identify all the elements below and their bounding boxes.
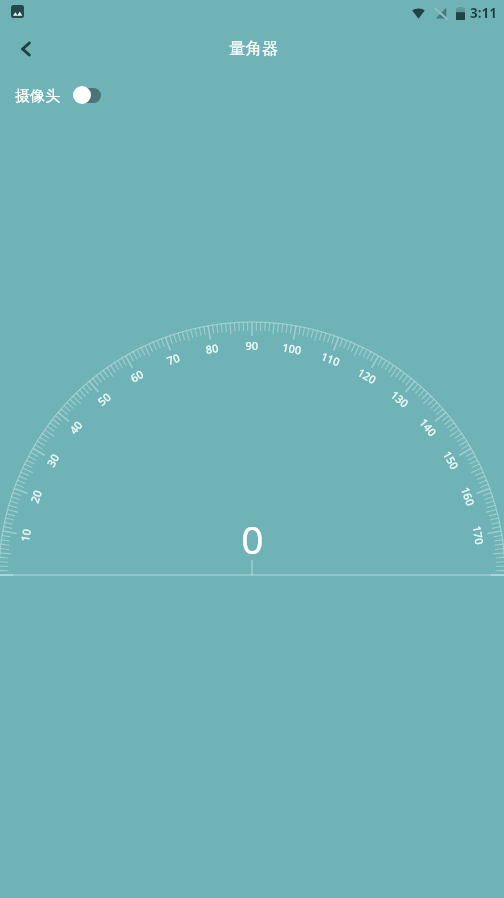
button[interactable]: Back bbox=[2, 25, 50, 72]
staticText: 3:11 bbox=[470, 4, 497, 22]
button[interactable]: Camera toggle bbox=[71, 82, 111, 108]
staticText: 量角器 bbox=[229, 38, 279, 59]
staticText: 摄像头 bbox=[15, 87, 60, 106]
